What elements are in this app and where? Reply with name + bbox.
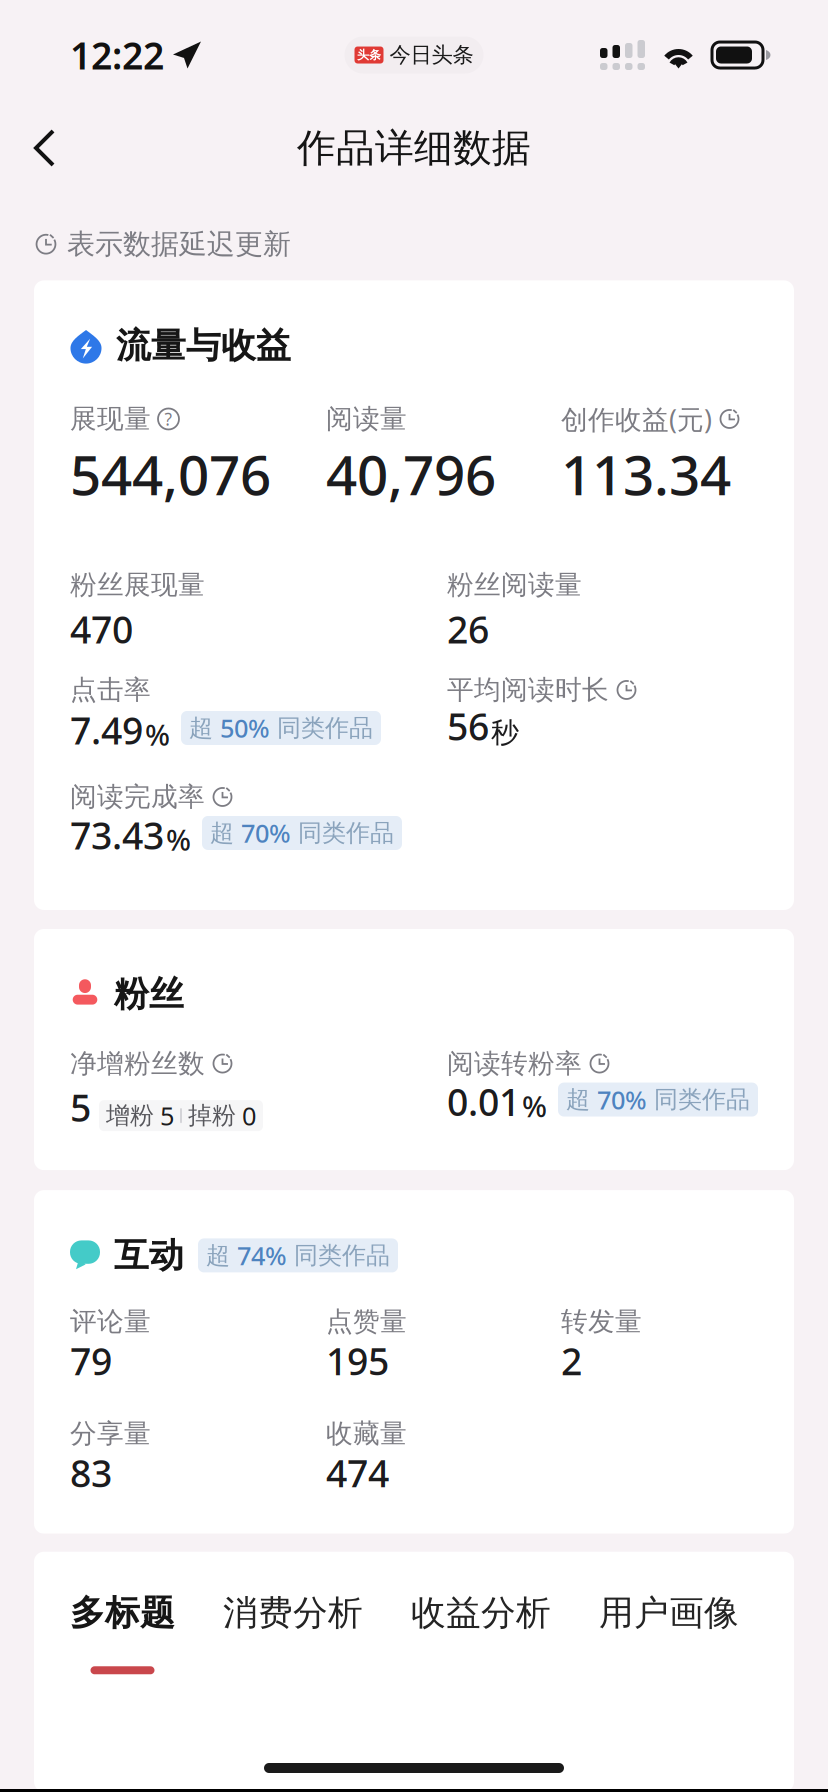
staticText: 113.34: [561, 438, 731, 510]
staticText: 70%: [241, 816, 291, 850]
staticText: 掉粉: [188, 1101, 236, 1130]
staticText: 74%: [237, 1239, 287, 1272]
button[interactable]: 用户画像: [599, 1592, 739, 1674]
staticText: 50%: [220, 711, 270, 745]
staticText: 今日头条: [389, 42, 473, 68]
staticText: 秒: [491, 715, 519, 750]
staticText: 超: [566, 1085, 597, 1114]
staticText: 点赞量: [326, 1305, 407, 1338]
staticText: 12:22: [70, 30, 164, 80]
staticText: 195: [326, 1336, 389, 1385]
staticText: 超: [210, 818, 241, 848]
button[interactable]: 收益分析: [411, 1592, 551, 1674]
staticText: 净增粉丝数: [70, 1047, 205, 1080]
staticText: 平均阅读时长: [447, 674, 609, 706]
staticText: 作品详细数据: [297, 124, 531, 172]
staticText: 阅读完成率: [70, 781, 205, 813]
staticText: 同类作品: [270, 713, 373, 743]
staticText: 点击率: [70, 674, 151, 706]
staticText: %: [145, 715, 170, 754]
staticText: 阅读转粉率: [447, 1047, 582, 1080]
staticText: 转发量: [561, 1305, 642, 1338]
button[interactable]: 多标题: [70, 1592, 175, 1674]
staticText: 7.49: [70, 705, 143, 755]
staticText: 5: [160, 1099, 174, 1132]
staticText: 评论量: [70, 1305, 151, 1338]
staticText: 同类作品: [291, 818, 394, 848]
staticText: 收益分析: [411, 1592, 551, 1634]
staticText: 同类作品: [287, 1241, 390, 1270]
staticText: %: [522, 1086, 547, 1125]
staticText: 5: [70, 1083, 91, 1132]
staticText: 2: [561, 1336, 582, 1385]
staticText: 超: [206, 1241, 237, 1270]
staticText: 头条: [357, 48, 381, 62]
staticText: 分享量: [70, 1417, 151, 1450]
staticText: 流量与收益: [116, 324, 291, 367]
staticText: 互动: [114, 1234, 184, 1277]
staticText: 表示数据延迟更新: [67, 227, 291, 261]
staticText: 79: [70, 1336, 112, 1385]
staticText: 同类作品: [647, 1085, 750, 1114]
staticText: 消费分析: [223, 1592, 363, 1634]
button[interactable]: 消费分析: [223, 1592, 363, 1674]
staticText: ?: [164, 407, 172, 430]
staticText: 40,796: [326, 438, 496, 510]
staticText: 粉丝展现量: [70, 569, 205, 601]
staticText: 收藏量: [326, 1417, 407, 1450]
button[interactable]: 返回: [8, 103, 81, 193]
staticText: 0: [242, 1099, 256, 1132]
staticText: 多标题: [70, 1592, 175, 1634]
staticText: 544,076: [70, 438, 271, 510]
staticText: 73.43: [70, 810, 164, 860]
staticText: 粉丝: [114, 973, 184, 1016]
staticText: 0.01: [447, 1077, 520, 1126]
staticText: 用户画像: [599, 1592, 739, 1634]
staticText: 26: [447, 604, 489, 654]
staticText: 56: [447, 701, 489, 751]
staticText: 展现量: [70, 403, 151, 435]
staticText: 83: [70, 1448, 112, 1497]
staticText: 超: [189, 713, 220, 743]
staticText: 474: [326, 1448, 389, 1497]
staticText: 470: [70, 604, 133, 654]
staticText: 创作收益(元): [561, 401, 712, 437]
staticText: %: [166, 820, 191, 859]
staticText: 阅读量: [326, 403, 407, 435]
staticText: 粉丝阅读量: [447, 569, 582, 601]
staticText: 增粉: [106, 1101, 154, 1130]
staticText: 70%: [597, 1083, 647, 1116]
